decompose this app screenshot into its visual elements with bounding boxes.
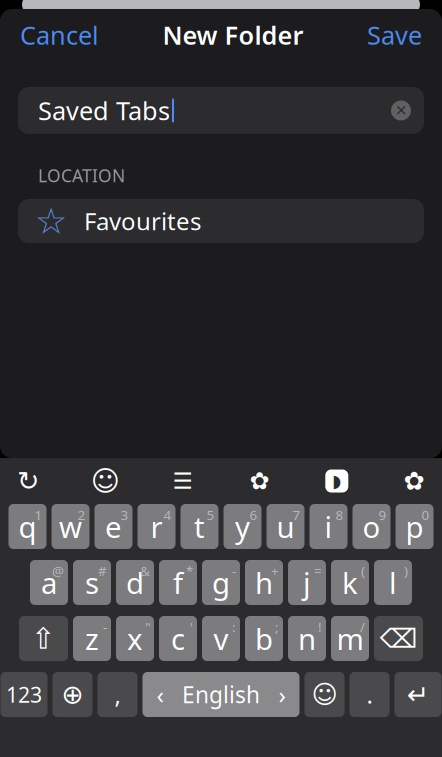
button[interactable]: k	[331, 560, 369, 605]
staticText: .	[366, 679, 372, 710]
staticText: &	[140, 562, 150, 580]
button[interactable]: r	[137, 504, 175, 549]
button[interactable]: m	[331, 616, 369, 661]
button[interactable]: Cancel	[0, 13, 119, 57]
staticText: English	[182, 679, 260, 709]
button[interactable]: Save	[347, 13, 442, 57]
staticText: +	[271, 562, 279, 580]
staticText: ↵	[407, 679, 429, 710]
staticText: ☺	[91, 465, 120, 497]
button[interactable]: u	[266, 504, 304, 549]
button[interactable]: l	[374, 560, 412, 605]
staticText: ›	[278, 679, 285, 710]
staticText: q	[18, 507, 36, 546]
button[interactable]: f	[159, 560, 197, 605]
staticText: !	[318, 618, 322, 636]
staticText: o	[362, 507, 380, 546]
button[interactable]: Delete	[374, 616, 423, 661]
staticText: f	[173, 563, 183, 602]
button[interactable]: Comma	[97, 672, 137, 717]
button[interactable]: Themes	[240, 464, 280, 498]
staticText: ⇧	[31, 622, 56, 655]
button[interactable]: Space, English	[142, 672, 299, 717]
staticText: h	[255, 563, 273, 602]
staticText: :	[232, 618, 236, 636]
staticText: Cancel	[20, 18, 99, 52]
button[interactable]: o	[352, 504, 390, 549]
staticText: a	[41, 563, 57, 602]
button[interactable]: ☆	[0, 199, 442, 243]
button[interactable]: Shift	[19, 616, 68, 661]
staticText: 1	[34, 506, 42, 524]
button[interactable]: e	[94, 504, 132, 549]
staticText: u	[276, 507, 294, 546]
staticText: #	[98, 562, 107, 580]
button[interactable]: g	[202, 560, 240, 605]
button[interactable]: d	[116, 560, 154, 605]
button[interactable]: y	[223, 504, 261, 549]
button[interactable]: Emoji	[85, 464, 125, 498]
button[interactable]: h	[245, 560, 283, 605]
staticText: w	[59, 507, 82, 546]
staticText: 6	[249, 506, 257, 524]
staticText: *	[186, 562, 193, 580]
button[interactable]: z	[73, 616, 111, 661]
staticText: LOCATION	[38, 164, 125, 187]
button[interactable]: p	[395, 504, 433, 549]
staticText: e	[105, 507, 122, 546]
button[interactable]: b	[245, 616, 283, 661]
button[interactable]: Return	[394, 672, 441, 717]
button[interactable]: x	[116, 616, 154, 661]
staticText: t	[194, 507, 205, 546]
staticText: r	[150, 507, 162, 546]
staticText: m	[336, 619, 363, 658]
staticText: 8	[335, 506, 343, 524]
button[interactable]: j	[288, 560, 326, 605]
staticText: "	[145, 618, 150, 636]
staticText: ✿	[403, 467, 424, 495]
staticText: -	[103, 618, 107, 636]
staticText: ☆	[35, 201, 67, 241]
staticText: 9	[378, 506, 386, 524]
button[interactable]: a	[30, 560, 68, 605]
staticText: ↻	[17, 466, 39, 496]
staticText: k	[342, 563, 358, 602]
staticText: ☰	[172, 468, 192, 494]
staticText: /	[360, 618, 365, 636]
button[interactable]: s	[73, 560, 111, 605]
staticText: i	[324, 507, 332, 546]
staticText: 0	[421, 506, 429, 524]
staticText: g	[212, 563, 230, 602]
button[interactable]: c	[159, 616, 197, 661]
staticText: ‹	[156, 679, 163, 710]
staticText: ,	[114, 679, 120, 710]
button[interactable]: Transform text	[8, 464, 48, 498]
staticText: )	[404, 562, 408, 580]
staticText: s	[85, 563, 99, 602]
staticText: x	[127, 619, 143, 658]
button[interactable]: Settings	[394, 464, 434, 498]
staticText: ◗	[332, 471, 341, 491]
staticText: ;	[275, 618, 279, 636]
button[interactable]: Emoji	[304, 672, 344, 717]
staticText: Favourites	[84, 205, 201, 237]
staticText: ⊕	[61, 679, 83, 710]
button[interactable]: n	[288, 616, 326, 661]
button[interactable]: 123	[0, 672, 47, 717]
button[interactable]: Assistant	[317, 464, 357, 498]
button[interactable]: v	[202, 616, 240, 661]
staticText: 2	[77, 506, 85, 524]
button[interactable]: Period	[349, 672, 389, 717]
button[interactable]: q	[8, 504, 46, 549]
staticText: b	[255, 619, 273, 658]
staticText: 7	[292, 506, 300, 524]
button[interactable]: Text formatting	[162, 464, 202, 498]
button[interactable]: Clear text	[386, 95, 416, 125]
button[interactable]: t	[180, 504, 218, 549]
staticText: 5	[206, 506, 214, 524]
button[interactable]: w	[51, 504, 89, 549]
button[interactable]: i	[309, 504, 347, 549]
button[interactable]: Next keyboard	[52, 672, 92, 717]
staticText: 3	[120, 506, 128, 524]
staticText: z	[85, 619, 99, 658]
